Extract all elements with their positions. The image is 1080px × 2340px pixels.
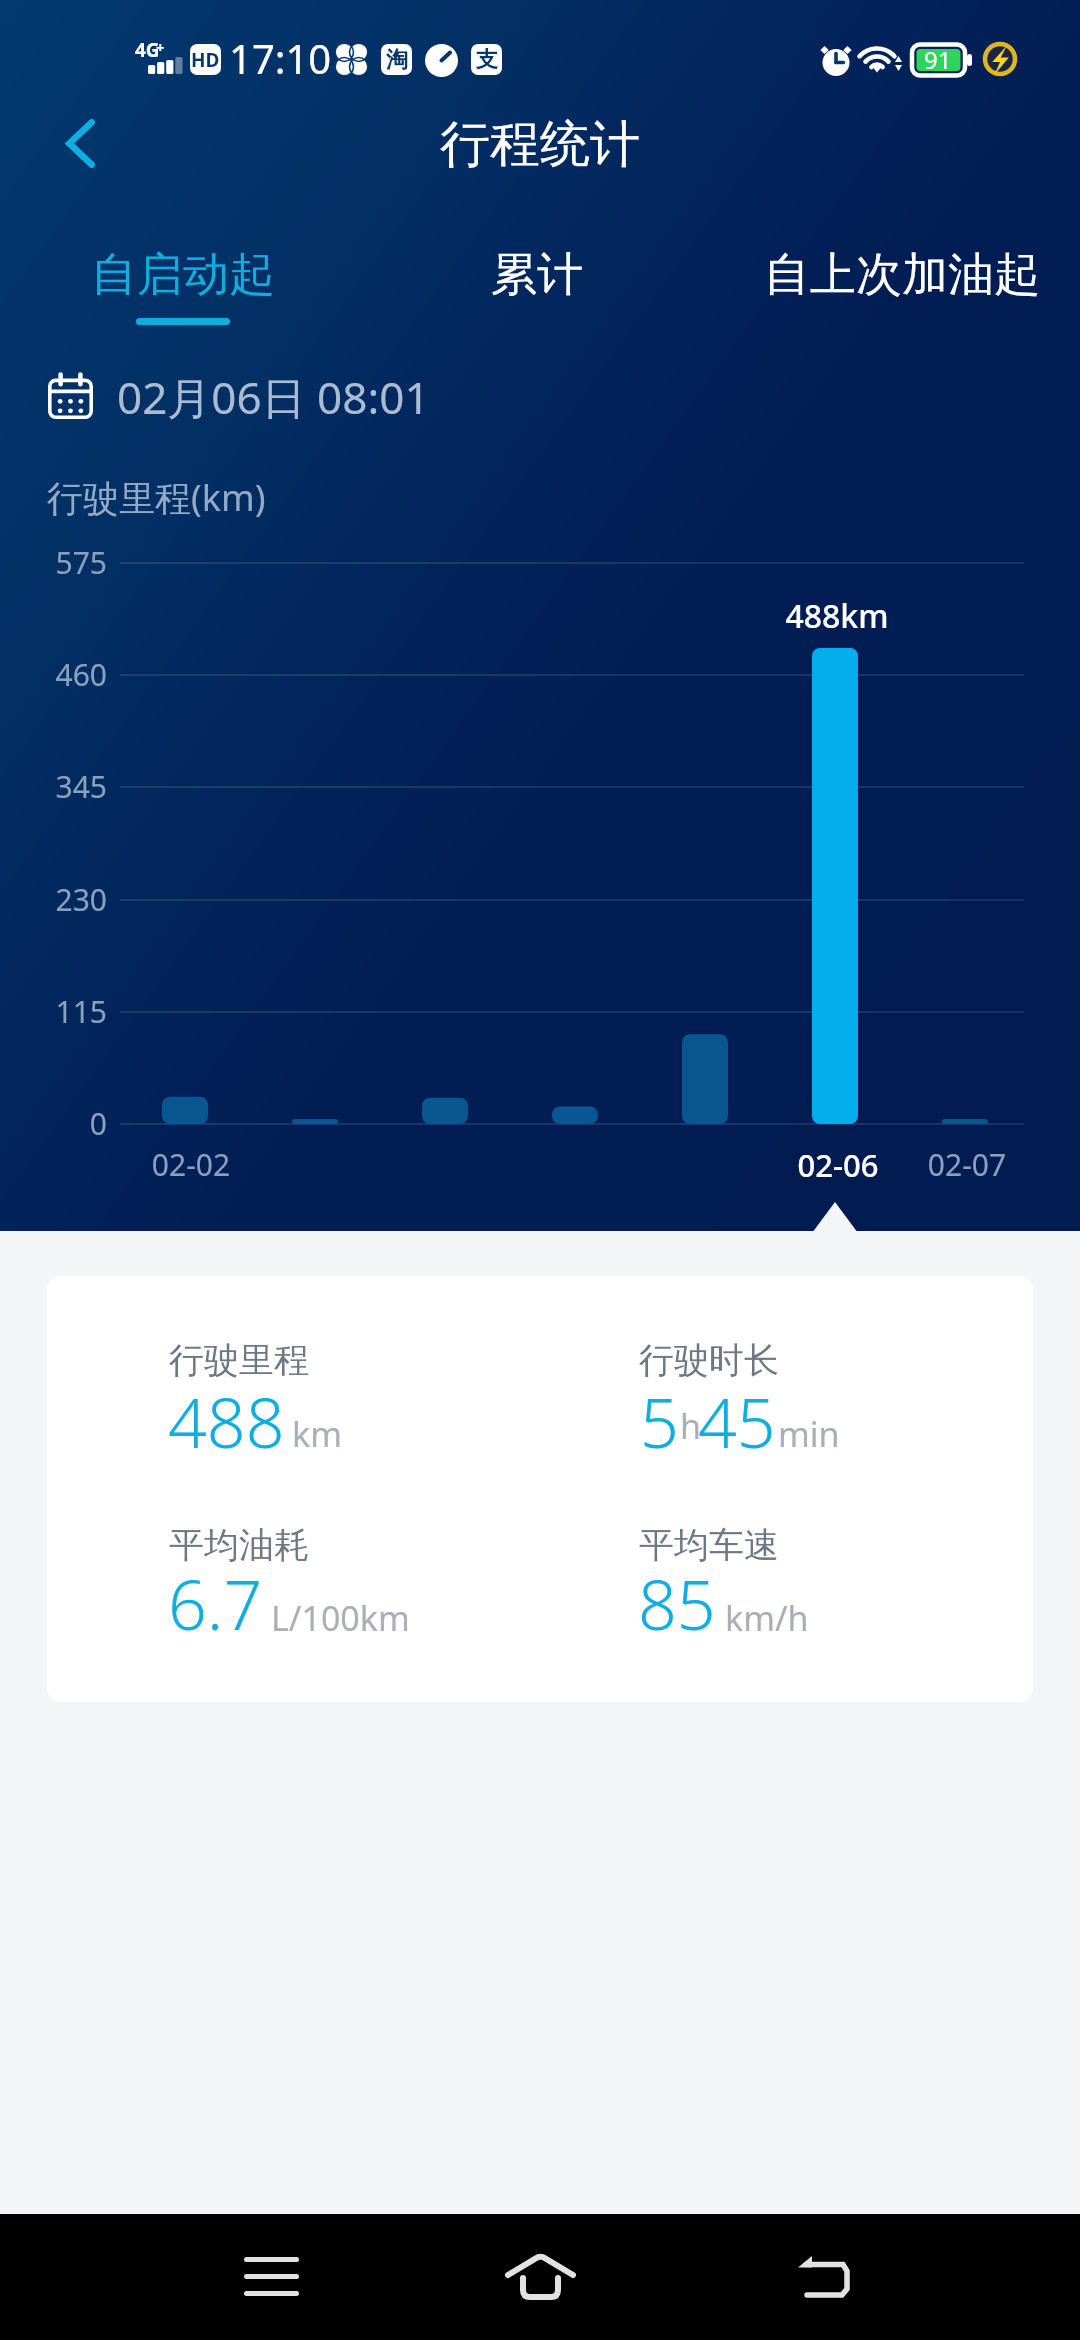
staticText: 行驶里程 xyxy=(169,1338,309,1382)
staticText: 6.7 xyxy=(168,1557,263,1650)
staticText: h xyxy=(680,1403,702,1449)
staticText: 行驶里程(km) xyxy=(47,473,266,522)
staticText: 45 xyxy=(698,1375,776,1468)
staticText: 345 xyxy=(0,766,107,807)
staticText: HD xyxy=(191,47,220,73)
staticText: 17:10 xyxy=(229,31,332,85)
staticText: 行驶时长 xyxy=(639,1338,779,1382)
staticText: 支 xyxy=(476,46,498,74)
staticText: 02-07 xyxy=(767,1144,1080,1185)
button[interactable]: 自上次加油起 xyxy=(740,232,1064,342)
staticText: 5 xyxy=(640,1375,679,1468)
staticText: 91 xyxy=(924,43,952,76)
staticText: 02-02 xyxy=(0,1144,391,1185)
button[interactable]: Back xyxy=(34,97,126,189)
staticText: 淘 xyxy=(386,46,408,74)
staticText: 02月06日 08:01 xyxy=(117,367,430,427)
button[interactable]: 累计 xyxy=(467,232,607,342)
staticText: 488 xyxy=(168,1375,285,1468)
staticText: 85 xyxy=(638,1557,716,1650)
staticText: 460 xyxy=(0,654,107,695)
button[interactable]: 自启动起 xyxy=(67,232,299,342)
staticText: 行程统计 xyxy=(340,113,740,176)
staticText: 115 xyxy=(0,991,107,1032)
staticText: 02-06 xyxy=(638,1144,1038,1186)
staticText: 平均油耗 xyxy=(169,1523,309,1567)
staticText: 自启动起 xyxy=(67,246,299,304)
staticText: 575 xyxy=(0,542,107,583)
staticText: 0 xyxy=(0,1103,107,1144)
staticText: km/h xyxy=(725,1595,809,1641)
staticText: km xyxy=(292,1411,342,1457)
button[interactable]: Recent apps xyxy=(181,2214,361,2340)
staticText: L/100km xyxy=(271,1595,410,1641)
staticText: min xyxy=(778,1411,840,1457)
staticText: 4G xyxy=(135,37,160,63)
button[interactable]: Home xyxy=(450,2214,630,2340)
staticText: 自上次加油起 xyxy=(740,246,1064,304)
button[interactable]: Back xyxy=(734,2214,914,2340)
staticText: 230 xyxy=(0,879,107,920)
staticText: 488km xyxy=(637,594,1037,638)
staticText: 平均车速 xyxy=(639,1523,779,1567)
staticText: + xyxy=(156,37,165,57)
staticText: 累计 xyxy=(467,246,607,304)
